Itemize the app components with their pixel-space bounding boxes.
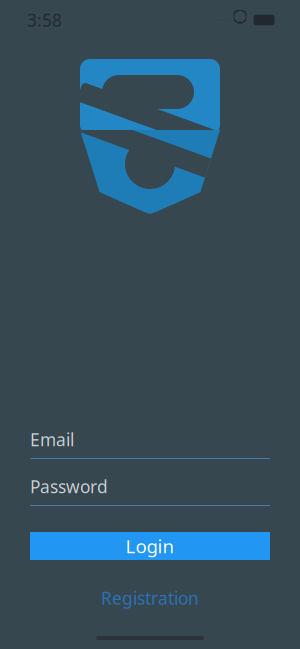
staticText: 3:58 (27, 8, 62, 31)
staticText: Password (30, 475, 108, 498)
staticText: Login (125, 534, 174, 558)
staticText: Email (30, 428, 74, 451)
staticText: Registration (101, 586, 199, 609)
button[interactable]: Login (30, 532, 270, 560)
button[interactable]: Registration (30, 588, 270, 608)
